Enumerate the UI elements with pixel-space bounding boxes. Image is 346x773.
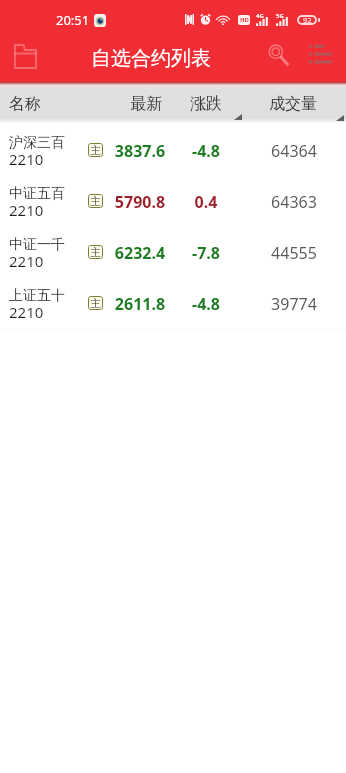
staticText: 6232.4 [110, 242, 170, 264]
button[interactable]: List options [302, 36, 338, 72]
button[interactable]: 沪深三百 [0, 124, 346, 176]
staticText: -4.8 [176, 293, 236, 315]
staticText: 中证一千 [9, 236, 65, 254]
staticText: 92 [303, 15, 312, 25]
staticText: 5790.8 [110, 191, 170, 213]
staticText: -4.8 [176, 140, 236, 162]
button[interactable]: Search [260, 37, 296, 73]
button[interactable]: 中证五百 [0, 175, 346, 227]
staticText: 主 [90, 143, 101, 157]
staticText: 主 [90, 194, 101, 208]
staticText: 最新 [130, 94, 162, 114]
staticText: 上证五十 [9, 287, 65, 305]
staticText: 成交量 [269, 94, 317, 114]
staticText: 2210 [9, 149, 44, 169]
staticText: 64363 [264, 191, 324, 213]
staticText: 39774 [264, 293, 324, 315]
staticText: 主 [90, 245, 101, 259]
staticText: 主 [90, 296, 101, 310]
staticText: 20:51 [56, 11, 90, 29]
staticText: 2210 [9, 302, 44, 322]
button[interactable]: 上证五十 [0, 277, 346, 329]
staticText: -7.8 [176, 242, 236, 264]
staticText: 名称 [9, 94, 41, 114]
staticText: 2611.8 [110, 293, 170, 315]
staticText: 64364 [264, 140, 324, 162]
staticText: HD [240, 16, 249, 24]
staticText: 2210 [9, 251, 44, 271]
staticText: 2210 [9, 200, 44, 220]
staticText: 5G [276, 12, 284, 20]
staticText: 4G [256, 12, 264, 20]
staticText: 中证五百 [9, 185, 65, 203]
staticText: 涨跌 [190, 94, 222, 114]
staticText: 44555 [264, 242, 324, 264]
staticText: 自选合约列表 [91, 46, 211, 71]
staticText: 3837.6 [110, 140, 170, 162]
button[interactable]: Folders [3, 34, 47, 78]
staticText: 0.4 [176, 191, 236, 213]
button[interactable]: 中证一千 [0, 226, 346, 278]
staticText: 沪深三百 [9, 134, 65, 152]
